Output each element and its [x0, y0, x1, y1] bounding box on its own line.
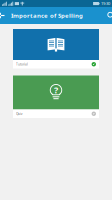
button[interactable]: ? [13, 75, 99, 118]
staticText: ? [54, 84, 58, 96]
staticText: Importance of Spelling [11, 11, 83, 20]
button[interactable]: Back [0, 7, 11, 24]
staticText: Tutorial [16, 62, 28, 66]
button[interactable]: Search [101, 7, 112, 24]
button[interactable]: Tutorial [13, 29, 99, 68]
staticText: 19:30 [101, 1, 110, 6]
staticText: Quiz [16, 112, 23, 116]
